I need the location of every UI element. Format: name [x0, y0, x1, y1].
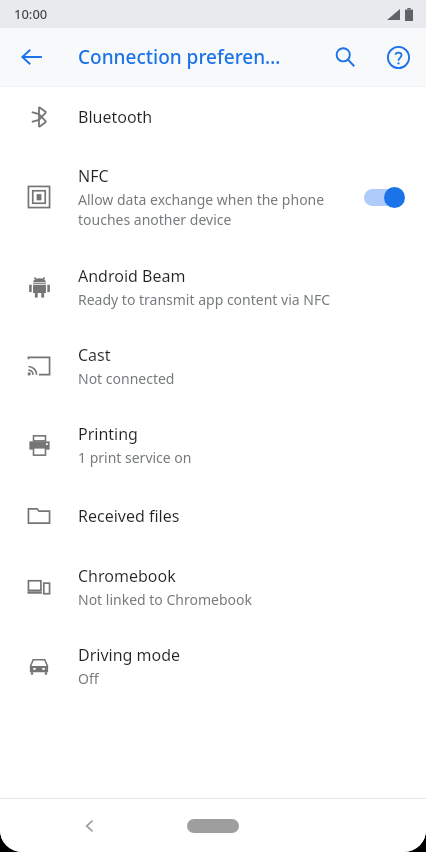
staticText: Driving mode: [78, 644, 181, 666]
button[interactable]: [362, 184, 410, 210]
button[interactable]: Driving mode: [0, 626, 426, 705]
staticText: Bluetooth: [78, 106, 153, 128]
staticText: Chromebook: [78, 565, 176, 587]
button[interactable]: Search: [323, 35, 367, 79]
staticText: 1 print service on: [78, 448, 192, 467]
staticText: Off: [78, 669, 99, 688]
staticText: Not linked to Chromebook: [78, 590, 252, 609]
button[interactable]: Chromebook: [0, 547, 426, 626]
button[interactable]: Received files: [0, 484, 426, 547]
staticText: 10:00: [14, 5, 48, 23]
staticText: Received files: [78, 505, 180, 527]
button[interactable]: Home: [187, 819, 239, 833]
button[interactable]: Bluetooth: [0, 87, 426, 147]
staticText: Cast: [78, 344, 111, 366]
button[interactable]: Printing: [0, 405, 426, 484]
staticText: Printing: [78, 423, 138, 445]
staticText: Allow data exchange when the phone touch…: [78, 190, 325, 229]
staticText: Not connected: [78, 369, 175, 388]
button[interactable]: Back: [70, 806, 110, 846]
button[interactable]: Help: [376, 35, 420, 79]
staticText: Connection preferen…: [78, 44, 281, 70]
staticText: Android Beam: [78, 265, 186, 287]
staticText: NFC: [78, 165, 109, 187]
button[interactable]: NFC: [0, 147, 426, 247]
staticText: Ready to transmit app content via NFC: [78, 290, 330, 309]
button[interactable]: Cast: [0, 326, 426, 405]
button[interactable]: Back: [10, 35, 54, 79]
button[interactable]: Android Beam: [0, 247, 426, 326]
